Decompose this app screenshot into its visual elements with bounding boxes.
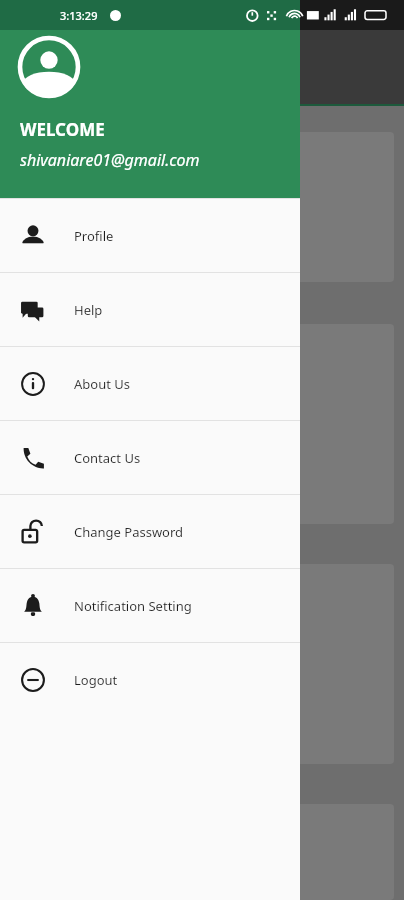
- staticText: cture: [14, 578, 51, 597]
- button[interactable]: Change Password: [0, 495, 300, 568]
- button[interactable]: About Us: [0, 347, 300, 420]
- button[interactable]: Notification Setting: [0, 569, 300, 642]
- staticText: 3:13:29: [60, 8, 98, 23]
- staticText: able: [14, 146, 44, 165]
- staticText: s: [14, 338, 22, 357]
- staticText: Profile: [74, 227, 114, 245]
- staticText: Contact Us: [74, 449, 141, 467]
- button[interactable]: Logout: [0, 643, 300, 716]
- button[interactable]: Contact Us: [0, 421, 300, 494]
- staticText: Notification Setting: [74, 597, 192, 615]
- staticText: About Us: [74, 375, 131, 393]
- staticText: Change Password: [74, 523, 184, 541]
- staticText: Help: [74, 301, 103, 319]
- button[interactable]: Profile: [0, 199, 300, 272]
- staticText: Logout: [74, 671, 118, 689]
- button[interactable]: Help: [0, 273, 300, 346]
- staticText: shivaniare01@gmail.com: [20, 149, 200, 171]
- staticText: WELCOME: [20, 118, 105, 141]
